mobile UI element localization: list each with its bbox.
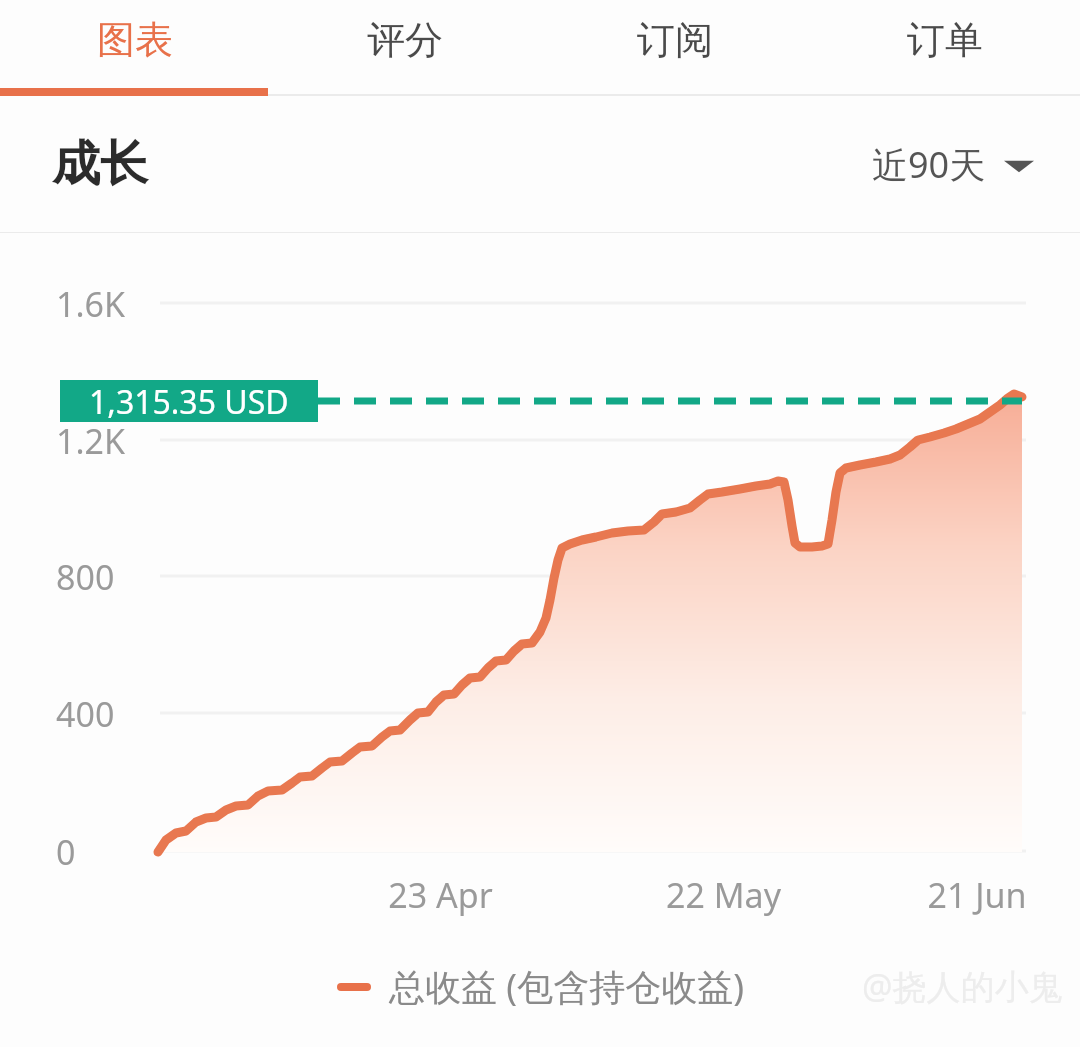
- staticText: 22 May: [666, 872, 781, 918]
- staticText: 0: [56, 829, 76, 873]
- staticText: 订阅: [637, 16, 713, 64]
- button[interactable]: 评分: [270, 0, 540, 96]
- staticText: 近90天: [872, 140, 986, 189]
- staticText: 1.2K: [56, 418, 126, 462]
- staticText: 总收益 (包含持仓收益): [389, 962, 744, 1011]
- staticText: 图表: [97, 16, 173, 64]
- staticText: 订单: [907, 16, 983, 64]
- staticText: 1.6K: [56, 281, 126, 325]
- staticText: 400: [56, 691, 115, 735]
- button[interactable]: 订单: [810, 0, 1080, 96]
- staticText: 21 Jun: [927, 872, 1027, 918]
- button[interactable]: 订阅: [540, 0, 810, 96]
- button[interactable]: 总收益 (包含持仓收益): [337, 962, 744, 1011]
- staticText: 1,315.35 USD: [89, 380, 289, 422]
- staticText: 23 Apr: [388, 872, 493, 918]
- button[interactable]: 图表: [0, 0, 270, 96]
- staticText: @挠人的小鬼: [862, 963, 1063, 1009]
- staticText: 评分: [367, 16, 443, 64]
- button[interactable]: 近90天: [872, 140, 1034, 189]
- staticText: 成长: [52, 134, 148, 194]
- staticText: 800: [56, 554, 115, 598]
